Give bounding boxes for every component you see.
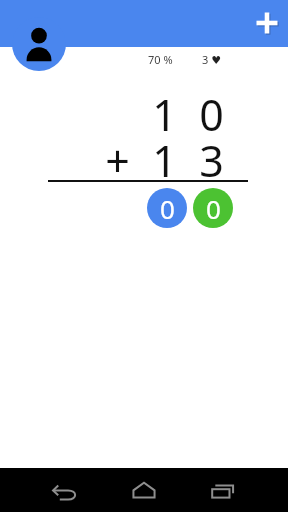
staticText: 0: [206, 191, 221, 226]
button[interactable]: Add: [248, 4, 286, 42]
button[interactable]: Recent apps: [199, 476, 247, 504]
staticText: 3: [199, 131, 224, 181]
staticText: 0: [199, 85, 224, 135]
staticText: +: [105, 131, 130, 181]
staticText: 3 ♥: [202, 52, 222, 67]
staticText: 1: [152, 85, 177, 135]
button[interactable]: Home: [120, 476, 168, 504]
button[interactable]: Profile: [12, 17, 66, 71]
staticText: 0: [160, 191, 175, 226]
button[interactable]: Tens answer: [147, 188, 187, 228]
staticText: 70 %: [148, 52, 173, 67]
button[interactable]: Ones answer: [193, 188, 233, 228]
staticText: 1: [152, 131, 177, 181]
button[interactable]: Back: [41, 476, 89, 504]
